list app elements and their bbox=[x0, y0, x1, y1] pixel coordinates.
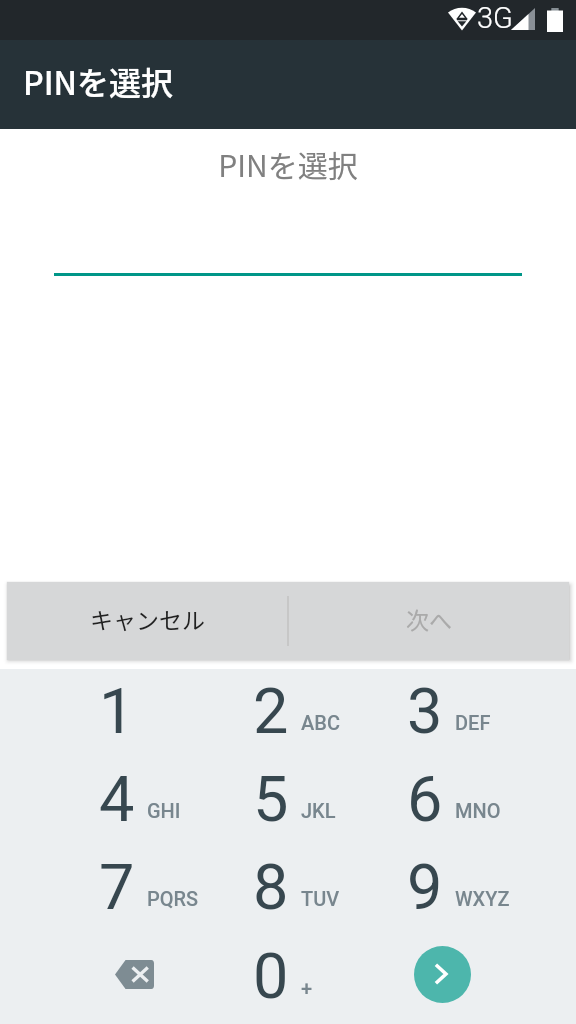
staticText: 5 bbox=[253, 763, 289, 837]
staticText: 1 bbox=[99, 675, 135, 749]
button[interactable]: 2 bbox=[211, 665, 365, 753]
button[interactable]: 9 bbox=[365, 841, 519, 929]
button[interactable]: 6 bbox=[365, 753, 519, 841]
staticText: 0 bbox=[253, 940, 289, 1014]
staticText: 6 bbox=[407, 763, 443, 837]
staticText: GHI bbox=[147, 799, 181, 822]
staticText: PINを選択 bbox=[23, 58, 174, 104]
button[interactable]: 5 bbox=[211, 753, 365, 841]
staticText: 9 bbox=[407, 851, 443, 925]
button[interactable]: 0 bbox=[211, 930, 365, 1018]
staticText: 3G bbox=[477, 1, 513, 35]
button[interactable]: 3 bbox=[365, 665, 519, 753]
button[interactable]: 8 bbox=[211, 841, 365, 929]
staticText: PQRS bbox=[147, 887, 199, 910]
staticText: MNO bbox=[455, 799, 501, 822]
button[interactable]: 7 bbox=[57, 841, 211, 929]
button[interactable]: 4 bbox=[57, 753, 211, 841]
staticText: 3 bbox=[407, 675, 443, 749]
staticText: PINを選択 bbox=[0, 142, 576, 185]
staticText: 次へ bbox=[406, 602, 452, 635]
staticText: TUV bbox=[301, 887, 340, 910]
staticText: 2 bbox=[253, 675, 289, 749]
staticText: 8 bbox=[253, 851, 289, 925]
button[interactable]: Next bbox=[365, 930, 519, 1018]
staticText: キャンセル bbox=[90, 602, 205, 635]
button[interactable]: キャンセル bbox=[7, 582, 288, 660]
staticText: WXYZ bbox=[455, 887, 510, 910]
staticText: + bbox=[301, 976, 313, 999]
button[interactable]: 次へ bbox=[288, 582, 569, 660]
staticText: 4 bbox=[99, 763, 135, 837]
button[interactable]: 1 bbox=[57, 665, 211, 753]
staticText: 7 bbox=[99, 851, 135, 925]
staticText: ABC bbox=[301, 711, 340, 734]
staticText: DEF bbox=[455, 711, 491, 734]
button[interactable]: Backspace bbox=[57, 930, 211, 1018]
staticText: JKL bbox=[301, 799, 336, 822]
